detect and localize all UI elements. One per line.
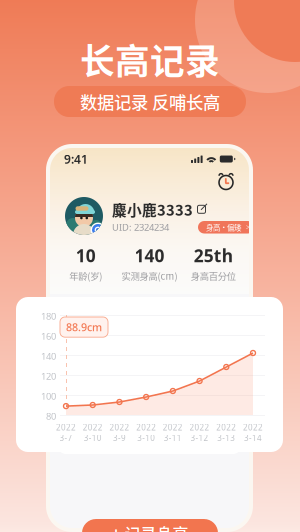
staticText: 160 [41, 330, 56, 342]
staticText: 2022 [109, 422, 129, 433]
staticText: 麋小鹿3333 [112, 199, 193, 220]
staticText: UID: 2324234 [112, 221, 169, 233]
staticText: + [111, 522, 120, 532]
staticText: > [246, 223, 250, 232]
staticText: 2022 [190, 422, 210, 433]
staticText: 3-8 [99, 433, 109, 442]
button[interactable]: + [82, 519, 218, 532]
staticText: 80 [46, 410, 56, 422]
staticText: 25th [194, 244, 233, 267]
button[interactable]: Reminders [217, 171, 235, 190]
button[interactable]: 身高·偏矮 [198, 221, 254, 233]
staticText: 2022 [83, 422, 103, 433]
staticText: 2022 [164, 424, 180, 433]
staticText: 3-10 [137, 433, 155, 443]
staticText: 2022 [243, 422, 263, 433]
staticText: 2022 [56, 422, 76, 433]
staticText: 100 [41, 390, 56, 402]
staticText: 3-11 [164, 433, 182, 443]
staticText: 2022 [136, 422, 156, 433]
staticText: 3-10 [142, 433, 156, 442]
staticText: 2022 [119, 424, 135, 433]
staticText: 10 [76, 244, 96, 267]
staticText: 身高·偏矮 [206, 222, 241, 233]
staticText: 140 [41, 350, 56, 362]
staticText: 2022 [141, 424, 157, 433]
staticText: 88.9cm [66, 320, 102, 334]
staticText: 2022 [163, 422, 183, 433]
staticText: 身高百分位 [191, 269, 236, 282]
staticText: 9:41 [64, 151, 88, 167]
staticText: 120 [41, 370, 56, 382]
staticText: 年龄(岁) [69, 269, 102, 282]
staticText: 3-13 [217, 433, 235, 443]
staticText: 140 [134, 244, 164, 267]
staticText: 数据记录 反哺长高 [80, 89, 220, 114]
staticText: 3-9 [113, 433, 126, 443]
staticText: 3-10 [84, 433, 102, 443]
staticText: 记录身高 [124, 521, 188, 532]
staticText: 2022 [210, 424, 226, 433]
staticText: 3-11 [165, 433, 179, 442]
staticText: 2022 [216, 422, 236, 433]
staticText: 2022 [96, 424, 112, 433]
staticText: 长高记录 [80, 34, 220, 84]
staticText: 实测身高(cm) [121, 269, 177, 282]
staticText: 3-12 [188, 433, 202, 442]
staticText: 2022 [73, 424, 89, 433]
staticText: 3-14 [244, 433, 262, 443]
staticText: 180 [41, 310, 56, 322]
staticText: 3-13 [211, 433, 225, 442]
staticText: 3-7 [76, 433, 86, 442]
staticText: 2022 [187, 424, 203, 433]
staticText: 3-7 [59, 433, 72, 443]
staticText: 3-9 [122, 433, 132, 442]
staticText: 3-12 [191, 433, 209, 443]
staticText: 80 [68, 412, 78, 423]
